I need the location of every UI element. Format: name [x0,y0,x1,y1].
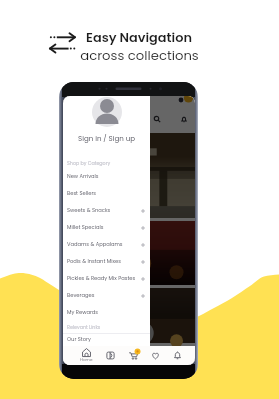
button[interactable]: Vadams & Appalams [63,236,150,253]
staticText: Pickles & Ready Mix Pastes [67,275,136,282]
staticText: Best Sellers [67,190,97,197]
button[interactable]: New Arrivals [63,168,150,185]
staticText: Beverages [67,292,95,299]
staticText: Easy Navigation [86,28,192,46]
staticText: Home [80,357,93,363]
staticText: Sign in / Sign up [78,134,136,144]
staticText: Our Story [67,336,91,343]
button[interactable]: Millet Specials [63,219,150,236]
staticText: Podis & Instant Mixes [67,258,121,265]
button[interactable]: Podis & Instant Mixes [63,253,150,270]
button[interactable]: Pickles & Ready Mix Pastes [63,270,150,287]
staticText: Relevant Links [67,324,101,331]
staticText: New Arrivals [67,173,99,180]
staticText: Millet Specials [67,224,104,231]
button[interactable]: Notifications [173,351,182,360]
other: Navigate between collections [49,33,77,55]
staticText: My Rewards [67,309,99,316]
staticText: Sweets & Snacks [67,207,111,214]
button[interactable]: Sweets & Snacks [63,202,150,219]
button[interactable]: Cart [129,351,138,360]
staticText: Shop by Category [67,160,111,167]
button[interactable]: Categories [106,351,115,360]
staticText: Vadams & Appalams [67,241,123,248]
button[interactable]: Home [80,348,93,363]
button[interactable]: Beverages [63,287,150,304]
staticText: across collections [80,46,199,64]
button[interactable]: My Rewards [63,304,150,321]
button[interactable]: Wishlist [151,351,160,360]
button[interactable]: Our Story [63,331,150,348]
button[interactable]: Best Sellers [63,185,150,202]
